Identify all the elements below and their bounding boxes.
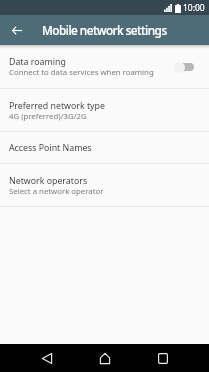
staticText: Data roaming (9, 56, 66, 68)
button[interactable]: Network operators (0, 164, 209, 206)
button[interactable]: Back (38, 345, 56, 371)
staticText: Select a network operator (9, 186, 104, 197)
staticText: 4G (preferred)/3G/2G (9, 111, 87, 122)
button[interactable]: Data roaming (0, 45, 209, 88)
button[interactable]: Navigate up (2, 15, 32, 45)
button[interactable]: Access Point Names (0, 132, 209, 163)
staticText: Network operators (9, 175, 88, 187)
button[interactable]: Preferred network type (0, 89, 209, 131)
staticText: Access Point Names (9, 142, 92, 154)
button[interactable]: Home (96, 345, 114, 371)
staticText: Preferred network type (9, 100, 105, 112)
staticText: Connect to data services when roaming (9, 67, 154, 78)
staticText: Mobile network settings (42, 22, 167, 38)
button[interactable]: Data roaming switch (174, 60, 194, 74)
staticText: 10:00 (183, 2, 205, 14)
button[interactable]: Recent apps (154, 345, 172, 371)
